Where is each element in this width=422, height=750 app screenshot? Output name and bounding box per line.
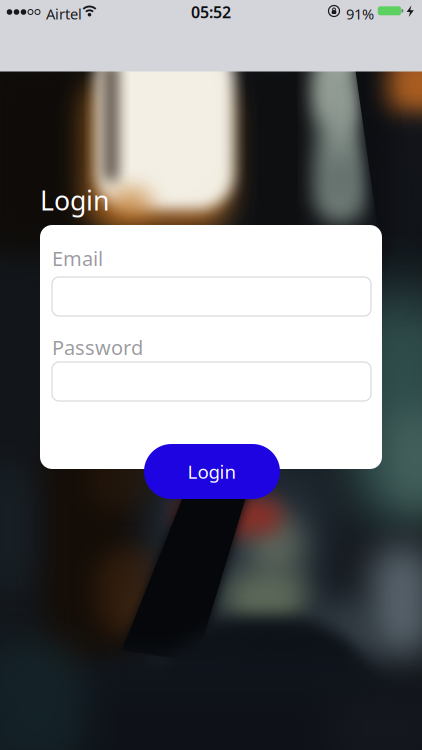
staticText: 05:52 <box>191 1 231 23</box>
staticText: Login <box>40 182 109 218</box>
staticText: Password <box>52 334 143 361</box>
staticText: Airtel <box>46 4 82 23</box>
staticText: Login <box>187 459 236 484</box>
staticText: Email <box>52 245 103 272</box>
staticText: 91% <box>346 4 374 23</box>
button[interactable]: Login <box>144 444 280 499</box>
